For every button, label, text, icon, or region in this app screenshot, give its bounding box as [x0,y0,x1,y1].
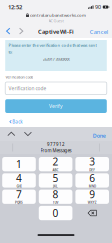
staticText: DEF [89,168,95,172]
button[interactable]: 977912 [14,141,98,154]
staticText: Verification code [9,85,47,91]
staticText: 90 [95,3,101,11]
staticText: TUV [53,200,59,205]
staticText: JKL [53,184,58,188]
staticText: Done [93,132,106,139]
button[interactable]: 2 [39,157,72,171]
button[interactable]: 5 [39,173,72,188]
staticText: Verify [49,103,63,109]
staticText: GHI [16,184,21,188]
staticText: +63917 3930XXX [42,56,69,62]
staticText: 3 [89,155,95,169]
staticText: WXYZ [88,200,97,205]
button[interactable]: 9 [75,190,109,204]
staticText: Cancel [90,28,108,36]
staticText: 9 [89,187,95,201]
button[interactable]: Previous field [6,130,17,137]
button[interactable]: Back [9,117,23,126]
staticText: 8 [53,187,59,201]
staticText: Back [12,119,22,125]
staticText: 6 [89,171,95,185]
staticText: 0 [53,206,59,220]
button[interactable]: 6 [75,173,109,188]
staticText: MNO [89,184,96,188]
staticText: to: [8,49,13,55]
staticText: From Messages [40,148,71,154]
staticText: ABC [53,168,59,172]
button[interactable]: 3 [75,157,109,171]
button[interactable]: Forward [17,26,25,36]
staticText: 7 [16,187,22,201]
staticText: central.arubanetworks.com [30,12,86,18]
staticText: 1 [16,157,22,171]
button[interactable]: 4 [2,173,36,188]
staticText: Captive Wi-Fi [38,28,74,35]
button[interactable]: Verify [5,99,107,113]
button[interactable]: Back [4,26,12,36]
button[interactable]: Cancel [88,26,110,38]
button[interactable]: 0 [39,206,72,220]
staticText: 977912 [47,141,65,147]
staticText: AC Guest [48,18,63,23]
button[interactable]: Done [91,130,108,141]
staticText: Verification code [5,74,33,80]
staticText: 4 [16,171,22,185]
staticText: 5 [53,171,59,185]
staticText: PQRS [15,200,23,205]
button[interactable]: 8 [39,190,72,204]
staticText: Please enter the verification code that … [8,42,96,48]
staticText: 2 [53,155,59,169]
button[interactable]: Delete [75,206,109,220]
button[interactable]: 1 [2,157,36,171]
button[interactable]: Next field [23,130,33,137]
staticText: 12:52 [8,3,22,11]
button[interactable]: 7 [2,190,36,204]
